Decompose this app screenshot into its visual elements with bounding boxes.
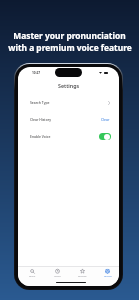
staticText: History — [54, 275, 61, 278]
other: Enable Voice toggle — [99, 133, 111, 140]
button[interactable]: Favorites — [69, 267, 94, 280]
button[interactable]: Enable Voice — [18, 128, 119, 145]
staticText: Clear History — [30, 117, 51, 122]
staticText: Settings — [104, 275, 112, 278]
staticText: Settings — [58, 82, 80, 89]
staticText: Favorites — [78, 275, 87, 278]
staticText: Clear — [101, 117, 110, 122]
staticText: Search Type — [30, 100, 50, 105]
button[interactable]: History — [44, 267, 69, 280]
button[interactable]: Clear History — [18, 111, 119, 128]
other: Open search type — [108, 101, 110, 105]
button[interactable]: Search — [18, 267, 44, 280]
button[interactable]: Settings — [94, 267, 119, 280]
staticText: with a premium voice feature — [8, 42, 132, 53]
staticText: 10:27 — [32, 71, 41, 75]
button[interactable]: Search Type — [18, 94, 119, 111]
staticText: Enable Voice — [30, 134, 51, 139]
staticText: Search — [29, 275, 36, 278]
staticText: Master your pronunciation — [13, 30, 126, 41]
